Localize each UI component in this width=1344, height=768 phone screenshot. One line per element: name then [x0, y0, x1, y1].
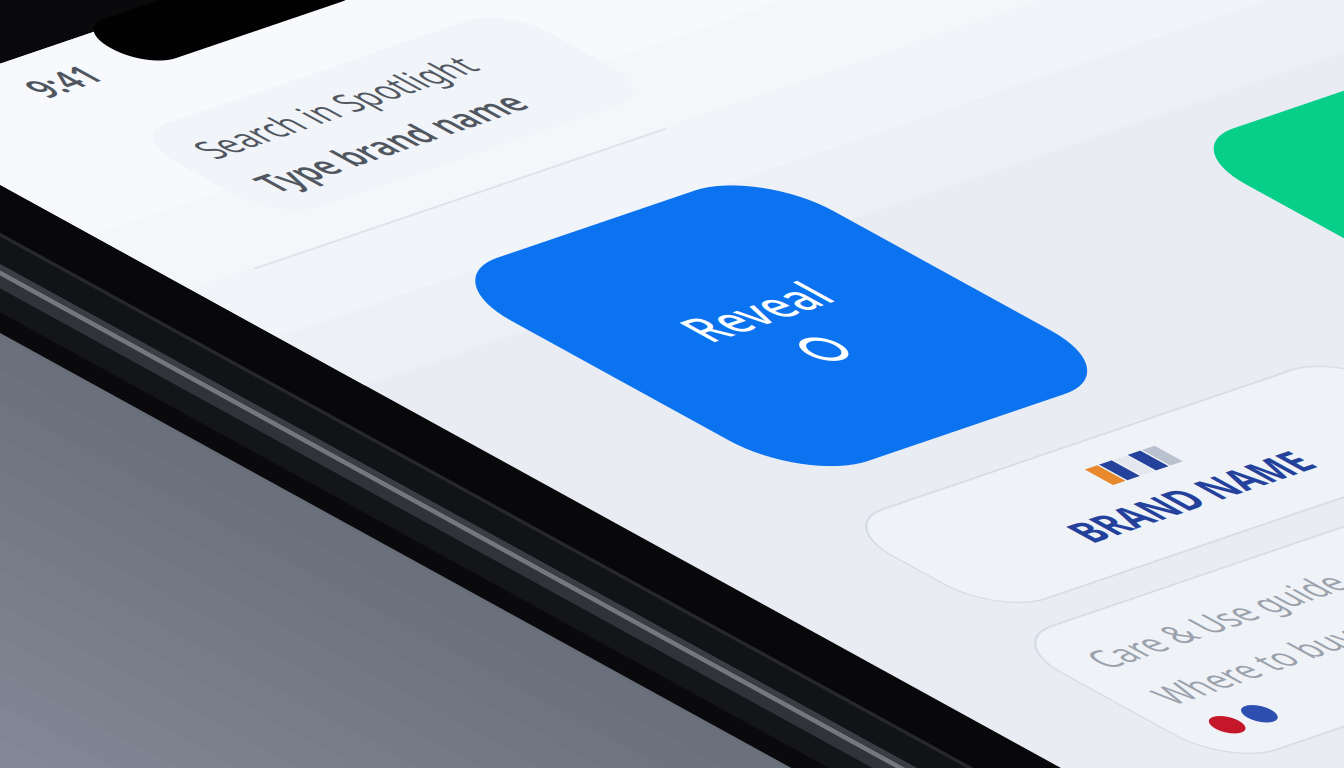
staticText: Reveal — [291, 491, 433, 551]
staticText: 9:41 — [140, 18, 206, 62]
button[interactable]: Search in Spotlight — [150, 120, 570, 260]
staticText: Type brand name — [180, 196, 465, 241]
button[interactable]: Reveal — [182, 375, 542, 715]
staticText: Search in Spotlight — [180, 140, 477, 184]
button[interactable]: Scan code — [860, 500, 1160, 768]
